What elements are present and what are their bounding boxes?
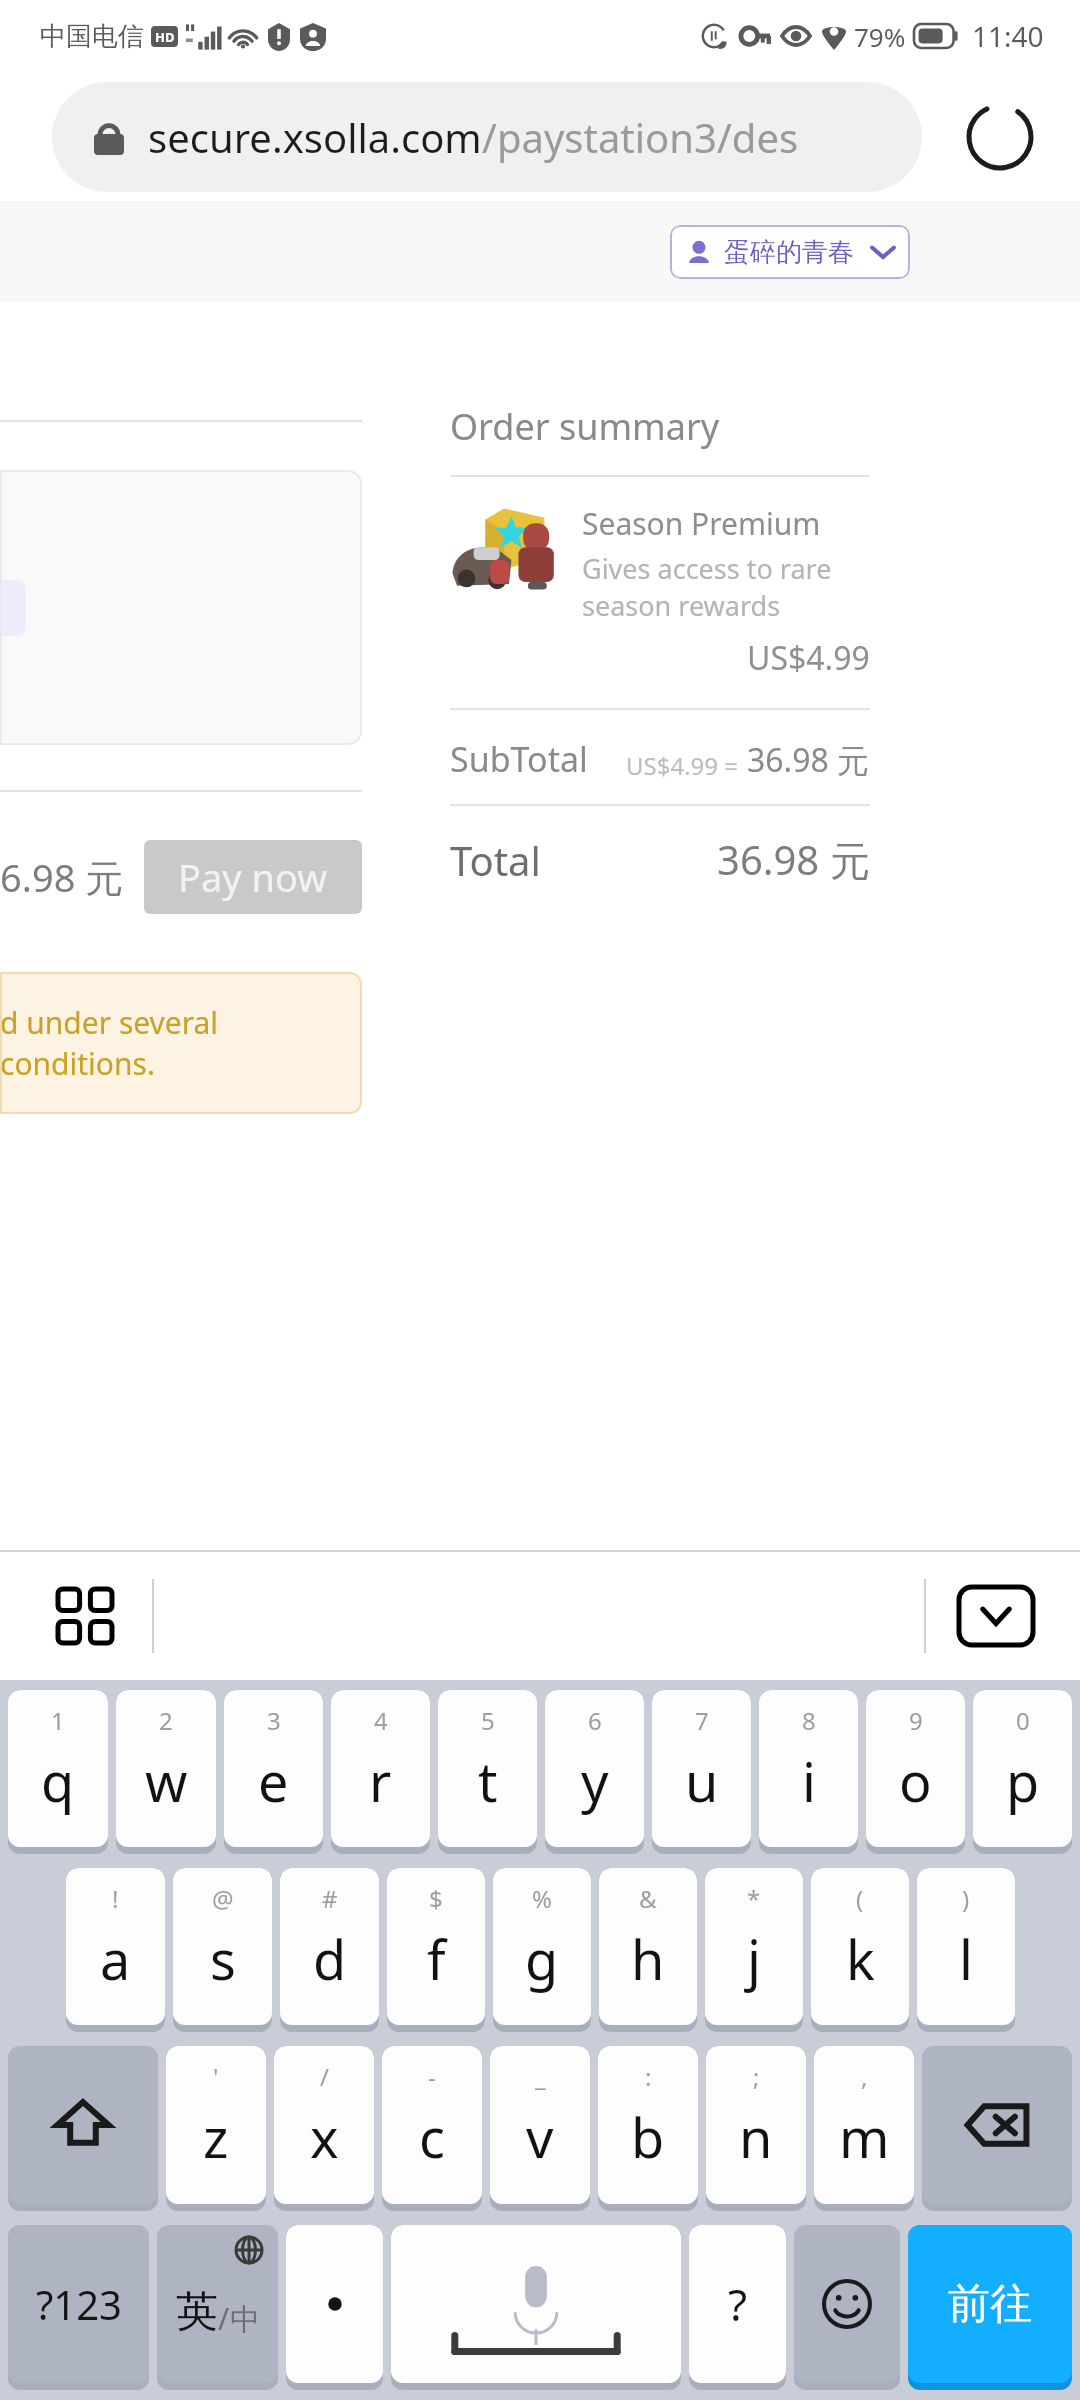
- staticText: ?123: [36, 2277, 122, 2331]
- staticText: 0: [1016, 1704, 1030, 1737]
- button[interactable]: Backspace: [922, 2046, 1072, 2211]
- staticText: /: [218, 2298, 230, 2339]
- button[interactable]: 前往: [908, 2225, 1072, 2390]
- button[interactable]: 3: [224, 1690, 323, 1854]
- staticText: 7: [695, 1704, 709, 1737]
- staticText: f: [427, 1922, 446, 1996]
- button[interactable]: Emoji: [794, 2225, 900, 2390]
- button[interactable]: %: [493, 1868, 591, 2032]
- staticText: season rewards: [582, 587, 781, 624]
- staticText: w: [145, 1744, 188, 1818]
- button[interactable]: 4: [331, 1690, 430, 1854]
- staticText: Order summary: [450, 402, 720, 451]
- staticText: i: [802, 1744, 816, 1818]
- button[interactable]: Clipboard: [40, 1571, 130, 1661]
- staticText: -: [428, 2060, 436, 2093]
- staticText: 6.98 元: [0, 851, 124, 903]
- staticText: 4: [374, 1704, 388, 1737]
- staticText: e: [258, 1744, 289, 1818]
- button[interactable]: 2: [116, 1690, 216, 1854]
- staticText: ': [213, 2060, 219, 2093]
- button[interactable]: ): [917, 1868, 1015, 2032]
- staticText: 11:40: [972, 17, 1044, 55]
- staticText: u: [685, 1744, 719, 1818]
- button[interactable]: ': [166, 2046, 266, 2211]
- staticText: 2: [159, 1704, 173, 1737]
- button[interactable]: ?123: [8, 2225, 149, 2390]
- staticText: ?: [728, 2274, 748, 2334]
- staticText: s: [210, 1922, 236, 1996]
- button[interactable]: (: [811, 1868, 909, 2032]
- staticText: d under several conditions.: [0, 1002, 362, 1084]
- button[interactable]: @: [173, 1868, 272, 2032]
- staticText: 9: [909, 1704, 923, 1737]
- staticText: $: [429, 1882, 443, 1915]
- button[interactable]: #: [280, 1868, 379, 2032]
- button[interactable]: Hide keyboard: [948, 1568, 1044, 1664]
- staticText: 蛋碎的青春: [724, 236, 854, 269]
- button[interactable]: secure.xsolla.com: [52, 82, 922, 192]
- staticText: b: [631, 2100, 665, 2174]
- staticText: Season Premium: [582, 503, 821, 544]
- staticText: Pay now: [178, 851, 328, 903]
- staticText: !: [112, 1882, 119, 1915]
- staticText: d: [313, 1922, 347, 1996]
- staticText: o: [899, 1744, 932, 1818]
- button[interactable]: Shift: [8, 2046, 158, 2211]
- button[interactable]: 1: [8, 1690, 108, 1854]
- staticText: 前往: [948, 2278, 1032, 2331]
- button[interactable]: Period: [286, 2225, 383, 2390]
- staticText: t: [478, 1744, 498, 1818]
- staticText: Total: [450, 833, 541, 887]
- staticText: (: [856, 1882, 864, 1915]
- staticText: c: [419, 2100, 445, 2174]
- staticText: HD: [155, 28, 175, 46]
- staticText: /paystation3/des: [482, 110, 799, 164]
- button[interactable]: 9: [866, 1690, 965, 1854]
- staticText: 8: [802, 1704, 816, 1737]
- button[interactable]: :: [598, 2046, 698, 2211]
- button[interactable]: 5: [438, 1690, 537, 1854]
- button[interactable]: ;: [706, 2046, 806, 2211]
- staticText: h: [631, 1922, 665, 1996]
- staticText: k: [846, 1922, 875, 1996]
- staticText: /: [320, 2060, 329, 2093]
- button[interactable]: _: [490, 2046, 590, 2211]
- button[interactable]: 6: [545, 1690, 644, 1854]
- staticText: US$4.99 =: [626, 749, 739, 782]
- button[interactable]: Stop loading: [952, 89, 1048, 185]
- staticText: @: [212, 1882, 234, 1915]
- staticText: 36.98 元: [717, 832, 870, 887]
- button[interactable]: 蛋碎的青春: [670, 225, 910, 279]
- staticText: :: [645, 2060, 652, 2093]
- button[interactable]: ?: [689, 2225, 786, 2390]
- button[interactable]: ,: [814, 2046, 914, 2211]
- button[interactable]: $: [387, 1868, 485, 2032]
- staticText: %: [532, 1882, 552, 1915]
- staticText: p: [1006, 1744, 1040, 1818]
- staticText: _: [535, 2060, 546, 2093]
- button[interactable]: 7: [652, 1690, 751, 1854]
- button[interactable]: -: [382, 2046, 482, 2211]
- button[interactable]: Pay now: [144, 840, 362, 914]
- button[interactable]: /: [274, 2046, 374, 2211]
- button[interactable]: !: [66, 1868, 165, 2032]
- staticText: q: [41, 1744, 75, 1818]
- staticText: 6: [588, 1704, 602, 1737]
- staticText: a: [100, 1922, 131, 1996]
- staticText: x: [310, 2100, 339, 2174]
- staticText: #: [322, 1882, 338, 1915]
- button[interactable]: &: [599, 1868, 697, 2032]
- staticText: 中国电信: [40, 20, 144, 53]
- staticText: v: [526, 2100, 554, 2174]
- button[interactable]: 8: [759, 1690, 858, 1854]
- button[interactable]: *: [705, 1868, 803, 2032]
- button[interactable]: 0: [973, 1690, 1072, 1854]
- button[interactable]: Switch language: [157, 2225, 278, 2390]
- staticText: g: [525, 1922, 559, 1996]
- button[interactable]: Space: [391, 2225, 681, 2390]
- staticText: *: [747, 1882, 761, 1915]
- staticText: m: [839, 2100, 890, 2174]
- staticText: r: [369, 1744, 392, 1818]
- staticText: j: [747, 1922, 761, 1996]
